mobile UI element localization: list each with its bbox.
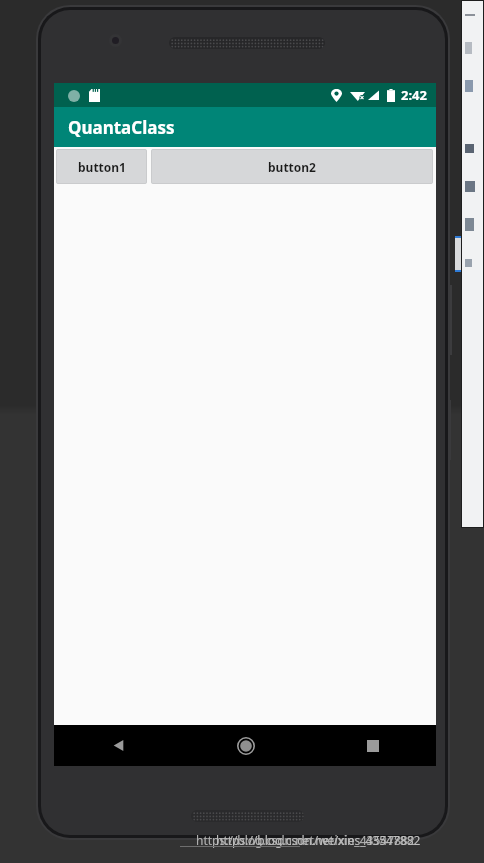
button[interactable]: button1 <box>56 149 147 184</box>
staticText: button1 <box>78 159 126 175</box>
staticText: QuantaClass <box>68 116 175 139</box>
staticText: button2 <box>268 159 316 175</box>
button[interactable]: Recent apps <box>309 725 436 766</box>
button[interactable]: Back <box>54 725 182 766</box>
button[interactable]: Home <box>182 725 309 766</box>
button[interactable]: QuantaClass <box>54 107 436 147</box>
staticText: https://blog.csdn.net/xies_43547882 <box>216 832 421 848</box>
staticText: https://blog.csdn.net/weixin_43547882 <box>196 832 415 848</box>
staticText: 2:42 <box>401 86 427 104</box>
button[interactable]: button2 <box>151 149 433 184</box>
